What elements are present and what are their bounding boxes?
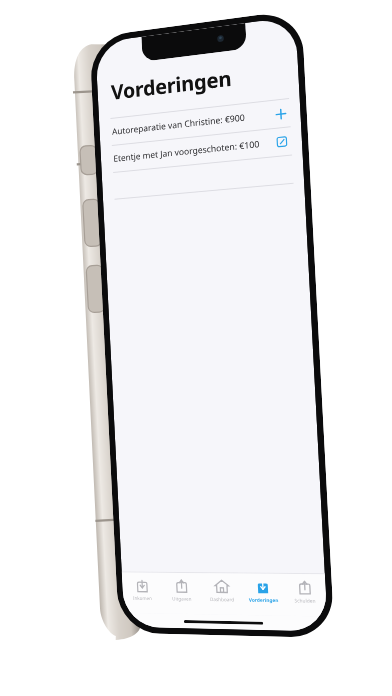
staticText: Autoreparatie van Christine: €900	[112, 111, 245, 138]
staticText: Etentje met Jan voorgeschoten: €100	[113, 138, 260, 165]
staticText: Uitgaven	[172, 595, 192, 602]
button[interactable]: Schulden	[282, 574, 326, 604]
staticText: Dashboard	[210, 596, 234, 602]
button[interactable]: Inkomen	[122, 572, 162, 601]
button[interactable]: Autoreparatie van Christine: €900	[99, 98, 301, 146]
button[interactable]: Dashboard	[200, 573, 242, 602]
staticText: Vorderingen	[248, 596, 279, 603]
staticText: Vorderingen	[110, 64, 232, 106]
button[interactable]: Vorderingen	[241, 573, 284, 603]
staticText: Schulden	[294, 597, 316, 604]
button[interactable]	[102, 154, 304, 200]
staticText: Inkomen	[132, 595, 152, 601]
button[interactable]: Uitgaven	[161, 573, 202, 602]
button[interactable]: Bewerken	[273, 133, 291, 151]
button[interactable]: Toevoegen	[272, 104, 289, 123]
button[interactable]: Etentje met Jan voorgeschoten: €100	[100, 126, 303, 173]
